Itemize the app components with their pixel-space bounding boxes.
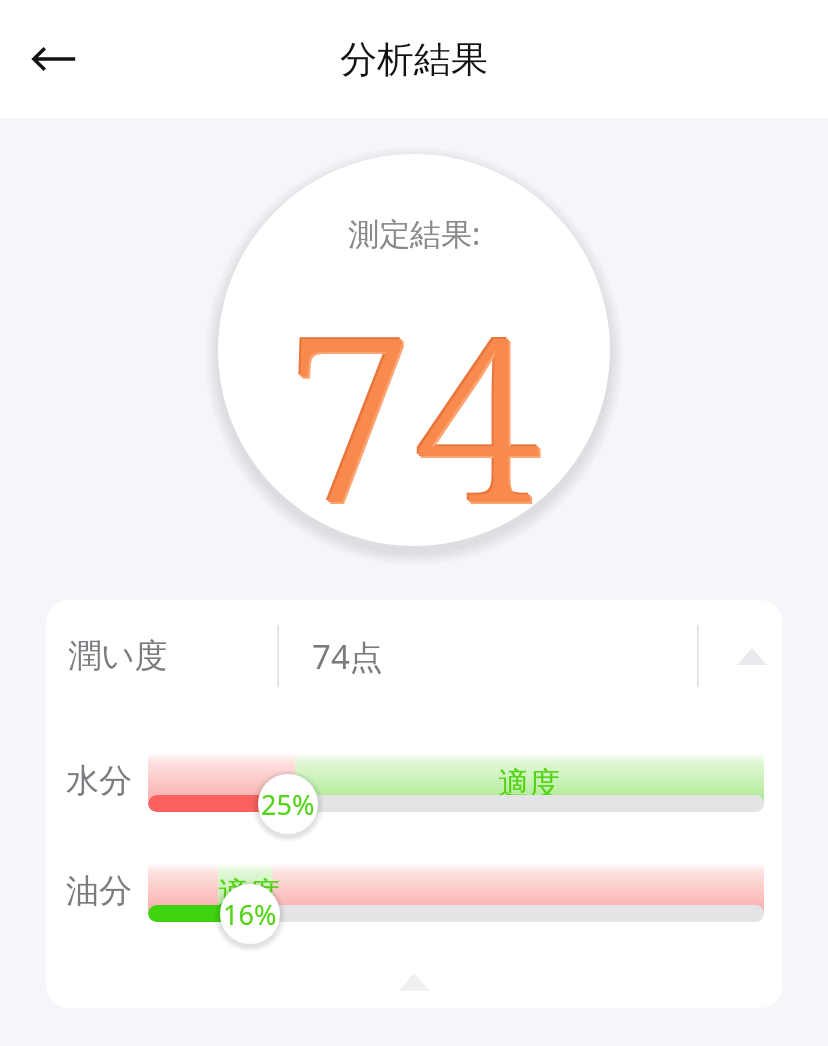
button[interactable]: 潤い度 (46, 600, 782, 712)
button[interactable]: Back (14, 19, 94, 99)
staticText: 16% (223, 896, 277, 933)
staticText: 分析結果 (340, 36, 488, 83)
staticText: 適度 (218, 874, 280, 913)
staticText: 適度 (498, 764, 560, 803)
staticText: 74 (287, 258, 542, 546)
staticText: 74 (289, 260, 544, 548)
staticText: 74 (285, 256, 540, 544)
button[interactable]: 水分 (46, 748, 782, 858)
staticText: 74点 (312, 634, 383, 679)
button[interactable]: Collapse section (382, 950, 446, 1008)
button[interactable]: 油分 (46, 858, 782, 968)
staticText: 水分 (66, 760, 132, 802)
staticText: 25% (261, 786, 315, 823)
staticText: 油分 (66, 870, 132, 912)
staticText: 潤い度 (68, 635, 168, 677)
staticText: 測定結果: (348, 212, 481, 254)
button[interactable]: Collapse (722, 626, 782, 686)
